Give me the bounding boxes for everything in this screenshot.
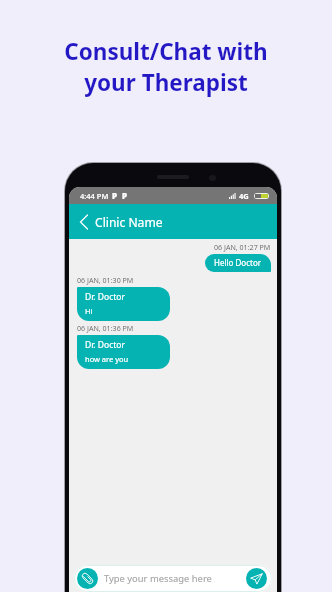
staticText: 06 JAN, 01:36 PM <box>77 323 134 333</box>
staticText: your Therapist <box>84 67 248 98</box>
staticText: 4:44 PM <box>80 191 109 201</box>
button[interactable]: Dr. Doctor <box>77 335 170 369</box>
button[interactable]: Back <box>74 212 94 232</box>
staticText: P <box>122 190 128 201</box>
staticText: how are you <box>85 354 129 364</box>
staticText: 06 JAN, 01:27 PM <box>214 242 271 252</box>
staticText: Type your message here <box>104 572 212 585</box>
staticText: 06 JAN, 01:30 PM <box>77 275 134 285</box>
staticText: Dr. Doctor <box>85 291 125 303</box>
staticText: Hello Doctor <box>214 257 262 268</box>
staticText: Hi <box>85 306 93 316</box>
staticText: Clinic Name <box>95 214 163 230</box>
staticText: 4G <box>239 191 249 201</box>
button[interactable]: Attach file <box>77 568 98 589</box>
staticText: Dr. Doctor <box>85 339 125 351</box>
staticText: Consult/Chat with <box>64 36 268 67</box>
button[interactable]: Send <box>246 568 267 589</box>
button[interactable]: Dr. Doctor <box>77 287 170 321</box>
staticText: P <box>112 190 118 201</box>
button[interactable]: Hello Doctor <box>205 254 271 272</box>
